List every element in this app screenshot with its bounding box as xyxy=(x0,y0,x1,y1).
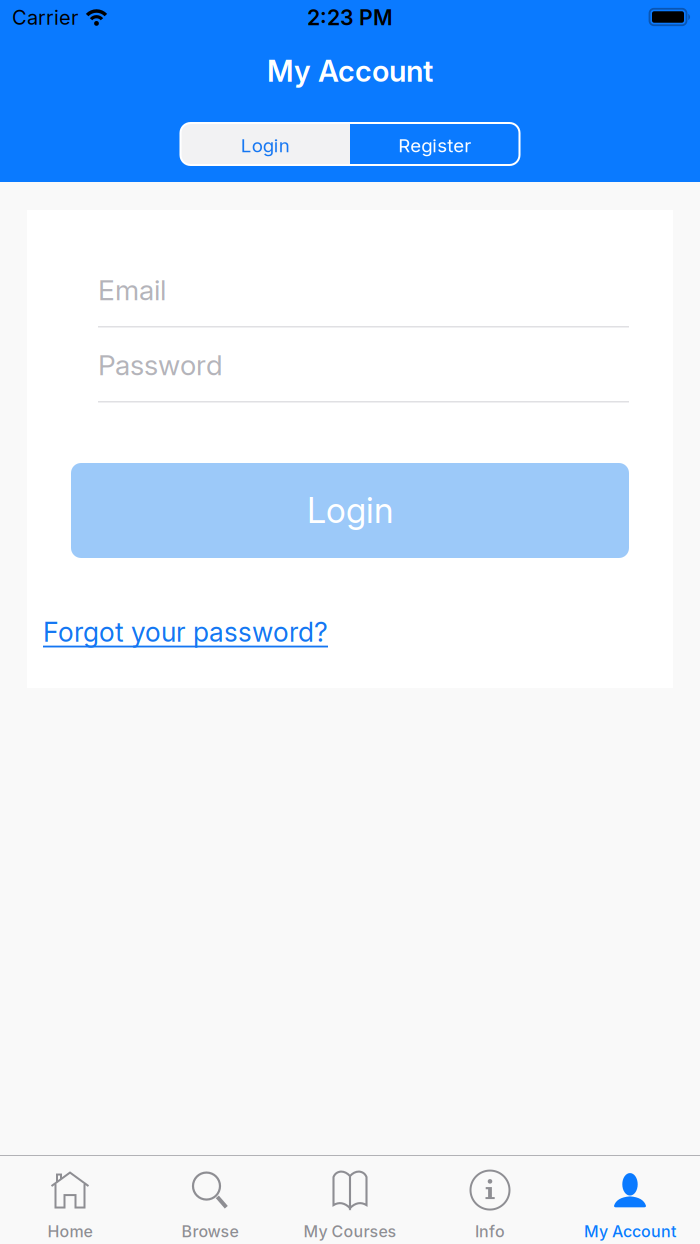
button[interactable]: Login xyxy=(180,123,350,165)
staticText: Password xyxy=(98,348,223,381)
button[interactable]: My Account xyxy=(560,1164,700,1244)
staticText: Register xyxy=(398,134,471,156)
button[interactable]: Forgot your password? xyxy=(43,614,328,650)
button[interactable]: Login xyxy=(71,463,629,558)
staticText: Home xyxy=(47,1222,92,1241)
staticText: Login xyxy=(241,134,290,156)
staticText: Browse xyxy=(181,1222,238,1241)
button[interactable]: Info xyxy=(420,1164,560,1244)
staticText: Forgot your password? xyxy=(43,616,328,648)
button[interactable]: Browse xyxy=(140,1164,280,1244)
button[interactable]: My Courses xyxy=(280,1164,420,1244)
button[interactable]: Register xyxy=(350,123,519,165)
button[interactable]: Email xyxy=(98,272,629,327)
staticText: My Account xyxy=(584,1222,676,1241)
button[interactable]: Home xyxy=(0,1164,140,1244)
staticText: Carrier xyxy=(12,6,78,29)
staticText: Login xyxy=(307,490,393,531)
staticText: Email xyxy=(98,273,166,306)
staticText: Info xyxy=(475,1222,505,1241)
staticText: 2:23 PM xyxy=(307,5,393,30)
staticText: My Courses xyxy=(303,1222,396,1241)
button[interactable]: Password xyxy=(98,347,629,402)
staticText: My Account xyxy=(267,54,433,88)
